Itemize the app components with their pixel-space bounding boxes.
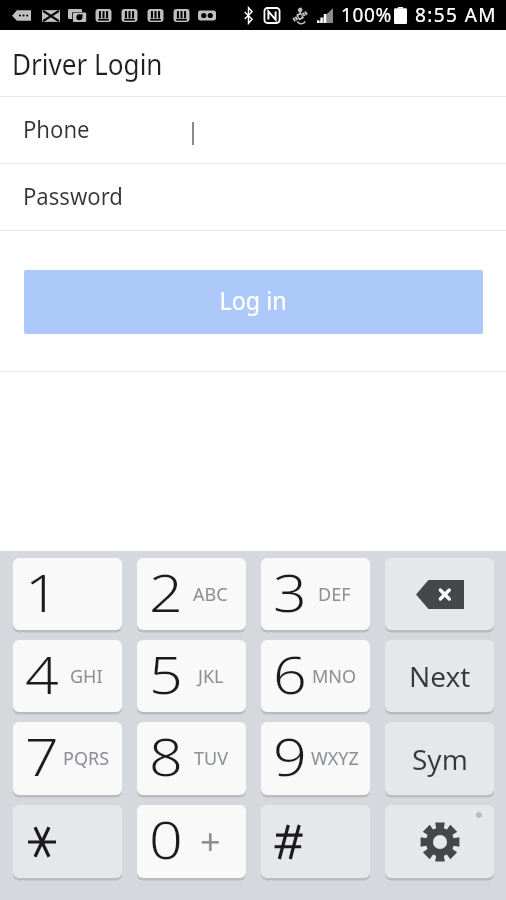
- button[interactable]: 1: [13, 558, 122, 630]
- button[interactable]: 5: [137, 640, 246, 712]
- staticText: 2: [149, 558, 184, 626]
- staticText: 8:55 AM: [415, 2, 497, 28]
- button[interactable]: Next: [385, 640, 494, 712]
- button[interactable]: Phone: [0, 97, 506, 164]
- staticText: DEF: [318, 582, 351, 607]
- staticText: 100%: [341, 2, 392, 28]
- staticText: 3: [273, 558, 308, 626]
- staticText: GHI: [70, 664, 103, 689]
- button[interactable]: 6: [261, 640, 370, 712]
- staticText: Next: [409, 657, 471, 695]
- staticText: Password: [23, 180, 124, 212]
- staticText: WXYZ: [311, 746, 359, 771]
- button[interactable]: 0: [137, 805, 246, 878]
- staticText: MNO: [312, 664, 357, 689]
- staticText: 1: [25, 558, 60, 626]
- staticText: Phone: [23, 113, 90, 145]
- button[interactable]: 8: [137, 722, 246, 795]
- button[interactable]: Password: [0, 164, 506, 231]
- button[interactable]: 2: [137, 558, 246, 630]
- button[interactable]: Sym: [385, 722, 494, 795]
- staticText: 8: [149, 722, 184, 790]
- button[interactable]: Settings: [385, 805, 494, 878]
- staticText: 9: [273, 722, 308, 790]
- staticText: PQRS: [63, 746, 110, 771]
- button[interactable]: 9: [261, 722, 370, 795]
- staticText: JKL: [198, 664, 224, 689]
- button[interactable]: Log in: [24, 270, 483, 334]
- button[interactable]: 4: [13, 640, 122, 712]
- button[interactable]: Pound: [261, 805, 370, 878]
- button[interactable]: Star: [13, 805, 122, 878]
- staticText: Driver Login: [12, 44, 163, 83]
- staticText: Log in: [220, 283, 287, 317]
- staticText: 0: [149, 805, 184, 873]
- staticText: 7: [25, 722, 60, 790]
- staticText: +: [200, 817, 221, 866]
- staticText: 4: [25, 640, 60, 708]
- button[interactable]: 7: [13, 722, 122, 795]
- button[interactable]: Backspace: [385, 558, 494, 630]
- staticText: Sym: [412, 740, 468, 778]
- staticText: ABC: [193, 582, 228, 607]
- staticText: TUV: [194, 746, 228, 771]
- staticText: 5: [149, 640, 184, 708]
- staticText: 6: [273, 640, 308, 708]
- button[interactable]: 3: [261, 558, 370, 630]
